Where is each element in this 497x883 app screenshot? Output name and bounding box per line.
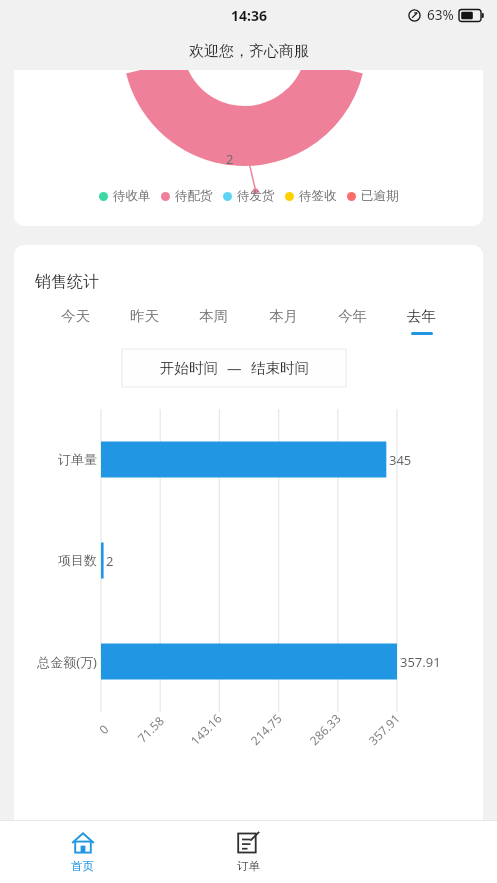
staticText: 总金额(万) xyxy=(25,653,97,671)
staticText: 结束时间 xyxy=(251,359,309,377)
staticText: — xyxy=(227,358,242,378)
button[interactable]: 待签收 xyxy=(285,188,337,204)
staticText: 357.91 xyxy=(400,653,441,671)
button[interactable]: 今天 xyxy=(58,307,93,335)
button[interactable]: 待配货 xyxy=(161,188,213,204)
staticText: 今年 xyxy=(338,307,367,325)
staticText: 357.91 xyxy=(365,710,403,748)
staticText: 待配货 xyxy=(175,188,213,204)
staticText: 订单量 xyxy=(25,451,97,467)
staticText: 2 xyxy=(106,552,114,570)
button[interactable]: 订单 xyxy=(165,821,331,883)
staticText: 项目数 xyxy=(25,552,97,568)
button[interactable]: 昨天 xyxy=(127,307,162,335)
staticText: 欢迎您，齐心商服 xyxy=(189,42,309,61)
button[interactable]: 开始时间 xyxy=(122,349,346,387)
staticText: 已逾期 xyxy=(361,188,399,204)
staticText: 待收单 xyxy=(113,188,151,204)
staticText: 63% xyxy=(427,6,454,24)
staticText: 286.33 xyxy=(306,710,344,748)
button[interactable]: 已逾期 xyxy=(347,188,399,204)
button[interactable]: 待收单 xyxy=(99,188,151,204)
staticText: 今天 xyxy=(61,307,90,325)
staticText: 2 xyxy=(226,150,234,168)
button[interactable]: 今年 xyxy=(335,307,370,335)
staticText: 订单 xyxy=(237,859,260,873)
button[interactable]: 去年 xyxy=(404,307,439,335)
staticText: 待发货 xyxy=(237,188,275,204)
staticText: 销售统计 xyxy=(35,272,99,292)
staticText: 214.75 xyxy=(247,710,285,748)
button[interactable]: 本月 xyxy=(266,307,301,335)
staticText: 14:36 xyxy=(231,6,267,25)
staticText: 去年 xyxy=(407,307,436,325)
button[interactable]: 本周 xyxy=(196,307,231,335)
staticText: 345 xyxy=(389,451,412,469)
staticText: 昨天 xyxy=(130,307,159,325)
button[interactable]: 首页 xyxy=(0,821,165,883)
staticText: 0 xyxy=(95,721,112,737)
staticText: 本月 xyxy=(269,307,298,325)
staticText: 待签收 xyxy=(299,188,337,204)
staticText: 71.58 xyxy=(134,712,167,746)
staticText: 开始时间 xyxy=(160,359,218,377)
staticText: 143.16 xyxy=(187,710,225,748)
staticText: 本周 xyxy=(199,307,228,325)
staticText: 首页 xyxy=(71,859,94,873)
button[interactable]: 待发货 xyxy=(223,188,275,204)
